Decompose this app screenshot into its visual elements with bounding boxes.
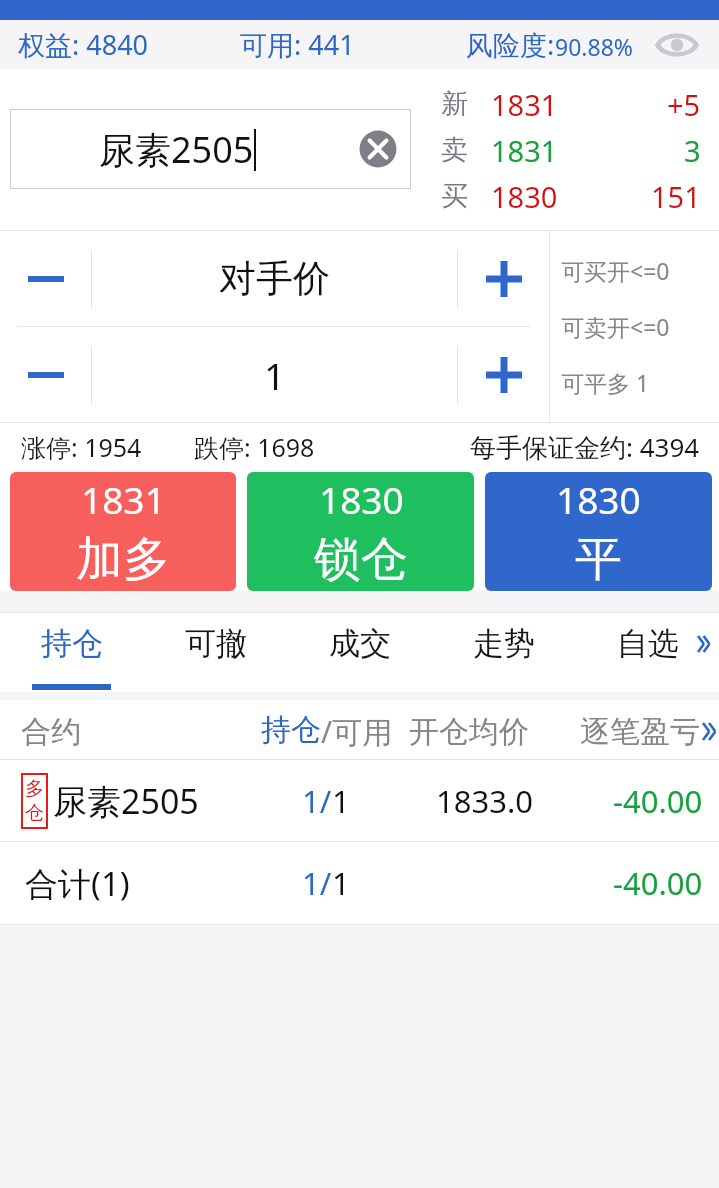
staticText: 1830: [319, 474, 404, 524]
staticText: 1: [332, 780, 350, 822]
staticText: 买: [441, 179, 468, 213]
staticText: 逐笔盈亏: [580, 713, 700, 751]
staticText: 1831: [491, 85, 558, 124]
staticText: 1833.0: [436, 780, 533, 822]
staticText: 权益: 4840: [18, 26, 149, 63]
staticText: 1/: [302, 780, 332, 822]
staticText: 持仓: [41, 624, 103, 663]
staticText: 3: [684, 131, 701, 170]
button[interactable]: Increase: [458, 327, 549, 422]
staticText: 1: [332, 862, 350, 904]
staticText: 1/: [302, 862, 332, 904]
staticText: 尿素2505: [99, 125, 254, 174]
staticText: 开仓均价: [409, 713, 529, 751]
staticText: 可用: 441: [240, 26, 355, 63]
button[interactable]: 尿素2505: [10, 109, 411, 189]
button[interactable]: Decrease: [0, 327, 91, 422]
button[interactable]: Toggle balance visibility: [653, 21, 701, 69]
staticText: 可撤: [185, 624, 247, 663]
staticText: 锁仓: [314, 530, 408, 589]
staticText: -40.00: [613, 862, 703, 904]
staticText: 1831: [491, 131, 558, 170]
staticText: 每手保证金约: 4394: [470, 429, 700, 465]
button[interactable]: 持仓: [0, 613, 143, 692]
button[interactable]: 成交: [287, 613, 431, 692]
staticText: 平: [575, 530, 622, 589]
staticText: 1831: [81, 474, 166, 524]
button[interactable]: Clear text: [344, 109, 411, 189]
button[interactable]: 多: [0, 760, 719, 841]
staticText: 1: [264, 350, 286, 400]
staticText: 走势: [473, 624, 535, 663]
button[interactable]: Increase: [458, 231, 549, 326]
staticText: 仓: [25, 801, 44, 825]
button[interactable]: 1830: [247, 472, 474, 591]
staticText: /可用: [321, 711, 393, 752]
button[interactable]: 1831: [10, 472, 236, 591]
staticText: 跌停: 1698: [194, 430, 315, 464]
staticText: +5: [667, 85, 701, 124]
staticText: 可买开<=0: [561, 255, 670, 286]
staticText: 合计(1): [25, 861, 130, 906]
staticText: 多: [25, 777, 44, 801]
staticText: 自选: [617, 624, 679, 663]
staticText: 涨停: 1954: [21, 430, 142, 464]
button[interactable]: 可撤: [143, 613, 287, 692]
staticText: 尿素2505: [53, 778, 199, 824]
staticText: 可平多 1: [561, 367, 650, 398]
button[interactable]: More tabs: [697, 614, 719, 674]
staticText: 卖: [441, 133, 468, 167]
staticText: 合约: [21, 713, 81, 751]
staticText: 新: [441, 87, 468, 121]
staticText: 151: [651, 177, 701, 216]
staticText: -40.00: [613, 780, 703, 822]
button[interactable]: Decrease: [0, 231, 91, 326]
staticText: 可卖开<=0: [561, 311, 670, 342]
button[interactable]: 走势: [431, 613, 575, 692]
staticText: 加多: [76, 530, 170, 589]
staticText: 90.88%: [555, 31, 633, 62]
staticText: 持仓: [261, 711, 321, 749]
staticText: 对手价: [219, 255, 330, 302]
staticText: 风险度:: [466, 26, 555, 63]
button[interactable]: 1830: [485, 472, 712, 591]
staticText: 成交: [329, 624, 391, 663]
staticText: 1830: [556, 474, 641, 524]
staticText: 1830: [491, 177, 558, 216]
button[interactable]: 自选: [575, 613, 719, 692]
